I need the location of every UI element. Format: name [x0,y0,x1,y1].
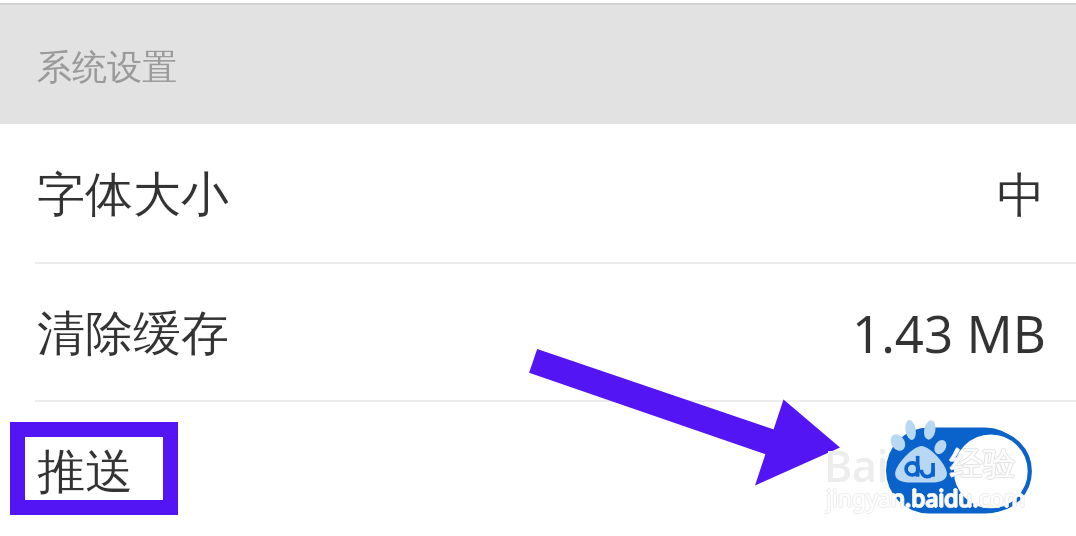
staticText: 经验 [950,442,1016,484]
staticText: jingyan.baidu.com [825,482,1025,513]
staticText: jingyan.baidu.com [826,481,1026,512]
staticText: Baidu [824,436,942,495]
staticText: 系统设置 [37,45,177,89]
button[interactable]: 清除缓存 [0,264,1076,400]
staticText: jingyan.baidu.com [826,483,1026,514]
staticText: 经验 [949,443,1015,485]
staticText: 经验 [950,444,1016,486]
staticText: 1.43 MB [852,298,1046,367]
staticText: 中 [997,166,1045,226]
staticText: 字体大小 [37,165,229,225]
staticText: jingyan.baidu.com [827,482,1027,513]
staticText: 推送 [37,442,133,502]
button[interactable]: 推送 [0,402,1076,536]
staticText: 经验 [950,443,1016,485]
staticText: 经验 [951,443,1017,485]
staticText: jingyan.baidu.com [826,482,1026,513]
button[interactable]: 推送开关 [886,427,1028,513]
button[interactable]: 字体大小 [0,124,1076,262]
staticText: 清除缓存 [37,304,229,364]
